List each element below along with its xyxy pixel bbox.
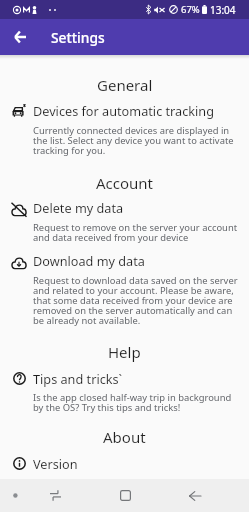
staticText: 13:04: [210, 3, 236, 17]
staticText: Settings: [51, 28, 105, 47]
button[interactable]: Back: [184, 479, 206, 512]
staticText: Help: [108, 342, 141, 362]
staticText: Currently connected devices are displaye…: [33, 124, 238, 157]
button[interactable]: Home: [114, 479, 136, 512]
staticText: Devices for automatic tracking: [33, 102, 214, 119]
button[interactable]: [0, 449, 249, 473]
staticText: Download my data: [33, 252, 145, 269]
button[interactable]: [0, 193, 249, 248]
staticText: Is the app closed half-way trip in backg…: [33, 391, 238, 414]
button[interactable]: Recent apps: [44, 479, 66, 512]
button[interactable]: [0, 364, 249, 419]
staticText: Request to remove on the server your acc…: [33, 221, 238, 244]
staticText: About: [103, 427, 146, 447]
staticText: 67%: [181, 3, 200, 16]
button[interactable]: Navigate up: [0, 19, 40, 55]
staticText: Request to download data saved on the se…: [33, 274, 238, 327]
staticText: Account: [96, 173, 154, 193]
staticText: General: [97, 75, 153, 95]
staticText: Version: [33, 455, 78, 472]
staticText: Delete my data: [33, 199, 124, 216]
staticText: Tips and tricks`: [33, 370, 123, 387]
button[interactable]: [0, 96, 249, 152]
button[interactable]: [0, 246, 249, 302]
